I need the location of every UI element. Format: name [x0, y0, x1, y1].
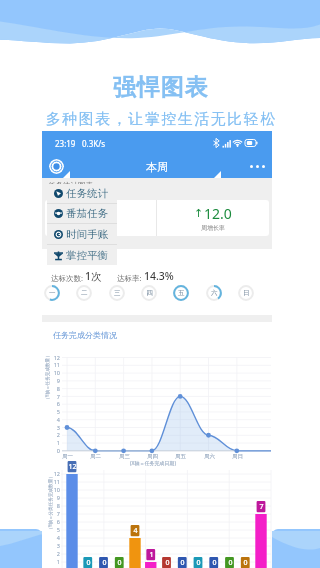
staticText: 周四 [147, 453, 158, 460]
staticText: 10 [53, 369, 60, 376]
staticText: 四 [146, 289, 153, 297]
staticText: 时间手账 [66, 228, 108, 241]
staticText: 12 [53, 470, 60, 477]
staticText: 4 [56, 534, 60, 541]
staticText: 2 [56, 431, 60, 438]
staticText: 1 [149, 550, 154, 560]
staticText: 7 [56, 510, 60, 517]
button[interactable]: App logo [49, 159, 64, 174]
staticText: 1.71 [87, 204, 115, 223]
button[interactable]: 三 [109, 285, 125, 301]
staticText: 7 [56, 393, 60, 400]
button[interactable]: 时间手账 [47, 224, 117, 244]
staticText: 达标率: [117, 273, 144, 283]
staticText: 10 [53, 486, 60, 493]
staticText: 0 [56, 447, 60, 454]
staticText: 11 [53, 361, 60, 368]
staticText: 任务统计 [66, 187, 108, 200]
staticText: 二 [81, 289, 88, 297]
staticText: 7 [259, 502, 264, 512]
staticText: 8 [56, 385, 60, 392]
staticText: 周一 [62, 453, 73, 460]
staticText: 任务统计图表 [48, 181, 93, 190]
staticText: 5 [56, 408, 60, 415]
staticText: （Y轴＝任务完成数量） [44, 353, 50, 402]
staticText: 强悍图表 [112, 73, 208, 102]
staticText: 14.3% [144, 269, 174, 283]
staticText: （Y轴＝分类任务完成数量） [47, 474, 53, 532]
staticText: 12 [53, 354, 60, 361]
button[interactable]: 日 [238, 285, 254, 301]
staticText: 0 [180, 558, 185, 568]
button[interactable]: ↑ [157, 200, 269, 236]
staticText: 8 [56, 502, 60, 509]
staticText: 五 [178, 289, 185, 297]
staticText: 12 [68, 462, 77, 472]
staticText: 4 [56, 416, 60, 423]
staticText: 0 [212, 558, 217, 568]
staticText: 3 [56, 424, 60, 431]
staticText: 6 [56, 400, 60, 407]
staticText: 周日 [232, 453, 243, 460]
staticText: 周六 [204, 453, 215, 460]
staticText: 2 [56, 550, 60, 557]
staticText: 0 [117, 558, 122, 568]
staticText: 周五 [175, 453, 186, 460]
staticText: 本周 [146, 160, 168, 174]
staticText: 12.0 [204, 204, 232, 223]
staticText: 9 [56, 377, 60, 384]
staticText: 0 [102, 558, 107, 568]
button[interactable]: More options [242, 155, 272, 178]
staticText: 多种图表，让掌控生活无比轻松 [45, 110, 276, 129]
button[interactable]: 二 [76, 285, 92, 301]
staticText: 0.3K/s [82, 138, 106, 149]
staticText: 周三 [119, 453, 130, 460]
staticText: 23:19 [55, 138, 76, 149]
staticText: 4 [133, 526, 138, 536]
staticText: 5 [56, 526, 60, 533]
staticText: 三 [114, 289, 121, 297]
staticText: 6 [56, 518, 60, 525]
staticText: ↑ [194, 207, 204, 220]
staticText: 9 [56, 494, 60, 501]
staticText: 0 [165, 558, 170, 568]
button[interactable]: 掌控平衡 [47, 245, 117, 265]
button[interactable]: 六 [206, 285, 222, 301]
staticText: 六 [211, 289, 218, 297]
staticText: 任务完成分类情况 [53, 330, 117, 340]
button[interactable]: 1.71 [45, 200, 156, 236]
staticText: 1次 [85, 269, 102, 283]
staticText: 日 [243, 289, 250, 297]
staticText: 0 [86, 558, 91, 568]
button[interactable]: 四 [141, 285, 157, 301]
staticText: 本周均数 [89, 224, 113, 232]
staticText: 0 [243, 558, 248, 568]
staticText: 1 [56, 439, 60, 446]
staticText: 11 [53, 478, 60, 485]
button[interactable]: 一 [44, 285, 60, 301]
button[interactable]: 番茄任务 [47, 204, 117, 223]
staticText: 3 [56, 542, 60, 549]
staticText: 周二 [90, 453, 101, 460]
staticText: 掌控平衡 [66, 249, 108, 262]
staticText: 一 [49, 289, 56, 297]
staticText: 番茄任务 [66, 207, 108, 220]
staticText: 0 [228, 558, 233, 568]
staticText: 达标次数: [51, 273, 85, 283]
staticText: 1 [56, 558, 60, 565]
staticText: 周增长率 [201, 224, 225, 232]
staticText: (X轴＝任务完成日期) [130, 460, 176, 467]
staticText: 0 [196, 558, 201, 568]
button[interactable]: 任务统计 [47, 184, 117, 203]
button[interactable]: 五 [173, 285, 189, 301]
